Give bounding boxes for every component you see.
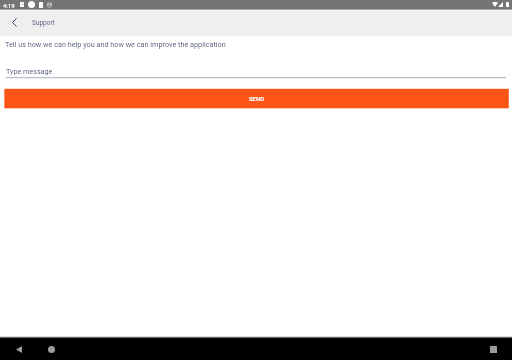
button[interactable]: Back bbox=[5, 13, 24, 32]
staticText: Type message bbox=[6, 67, 53, 75]
staticText: Support bbox=[32, 19, 55, 27]
staticText: SEND bbox=[249, 95, 265, 102]
button[interactable]: Recents bbox=[481, 338, 505, 360]
button[interactable]: Back bbox=[7, 338, 31, 360]
button[interactable]: Home bbox=[39, 338, 63, 360]
staticText: Tell us how we can help you and how we c… bbox=[5, 40, 226, 48]
staticText: 4:19 bbox=[3, 2, 15, 9]
button[interactable]: SEND bbox=[4, 88, 509, 109]
